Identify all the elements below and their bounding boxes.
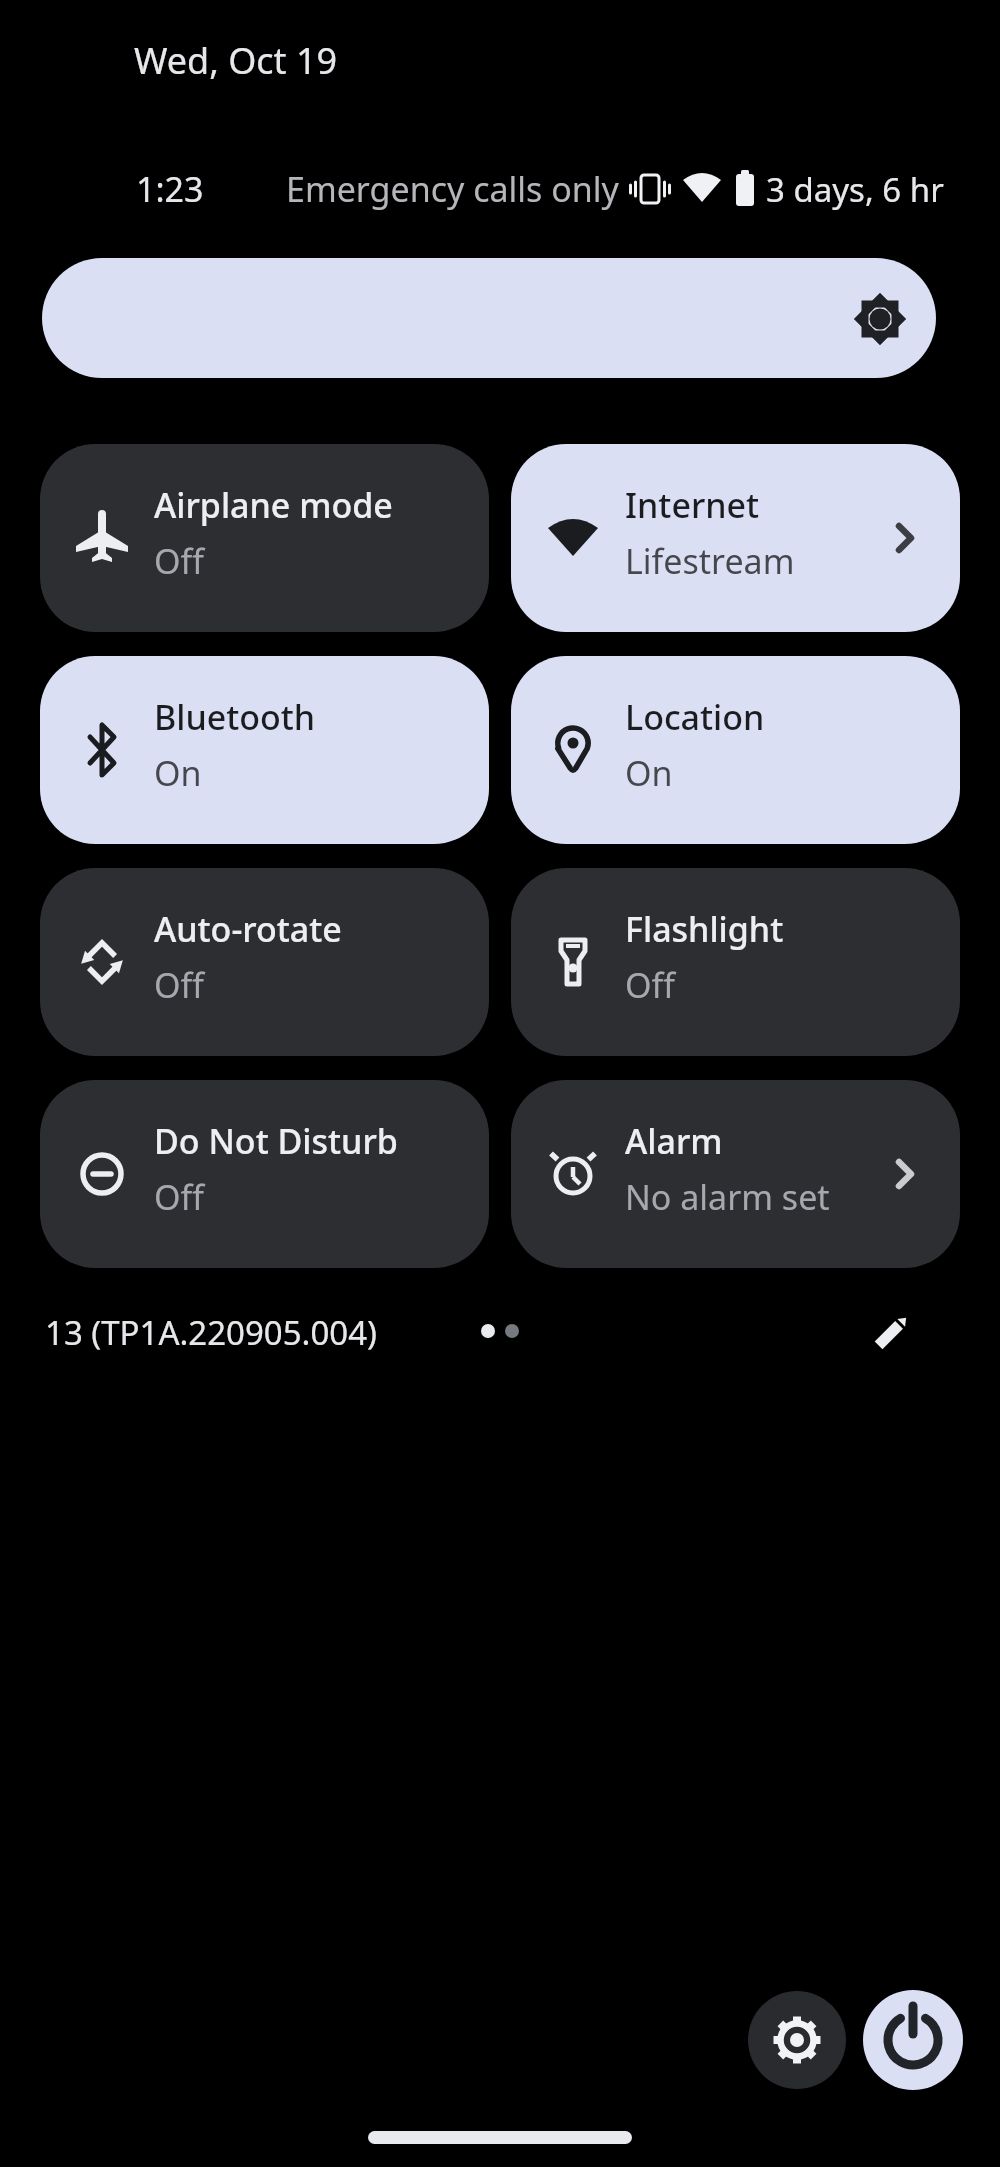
staticText: Bluetooth <box>154 694 316 740</box>
staticText: 3 days, 6 hr <box>766 167 944 212</box>
staticText: Emergency calls only <box>286 166 619 212</box>
staticText: Off <box>154 962 204 1008</box>
staticText: No alarm set <box>625 1174 830 1220</box>
staticText: Off <box>625 962 675 1008</box>
button[interactable]: Bluetooth <box>40 656 489 844</box>
staticText: Wed, Oct 19 <box>134 36 338 85</box>
staticText: Lifestream <box>625 538 795 584</box>
staticText: On <box>154 750 202 796</box>
staticText: Alarm <box>625 1118 723 1164</box>
staticText: Internet <box>625 482 760 528</box>
staticText: Airplane mode <box>154 482 393 528</box>
staticText: Do Not Disturb <box>154 1118 398 1164</box>
staticText: 1:23 <box>136 166 204 212</box>
staticText: On <box>625 750 673 796</box>
button[interactable]: Auto-rotate <box>40 868 489 1056</box>
staticText: Off <box>154 1174 204 1220</box>
button[interactable]: Do Not Disturb <box>40 1080 489 1268</box>
button[interactable]: Alarm <box>511 1080 960 1268</box>
button[interactable] <box>748 1991 846 2089</box>
button[interactable] <box>42 258 936 378</box>
staticText: Flashlight <box>625 906 784 952</box>
staticText: Location <box>625 694 765 740</box>
button[interactable]: Location <box>511 656 960 844</box>
button[interactable] <box>860 1300 924 1364</box>
staticText: 13 (TP1A.220905.004) <box>45 1310 377 1355</box>
button[interactable]: Internet <box>511 444 960 632</box>
staticText: Off <box>154 538 204 584</box>
button[interactable]: Flashlight <box>511 868 960 1056</box>
button[interactable] <box>863 1990 963 2090</box>
staticText: Auto-rotate <box>154 906 342 952</box>
button[interactable]: Airplane mode <box>40 444 489 632</box>
